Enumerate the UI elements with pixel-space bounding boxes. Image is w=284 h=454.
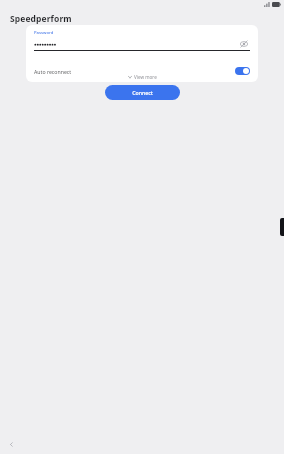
button[interactable]: View more [125, 73, 160, 81]
staticText: View more [134, 74, 157, 80]
other: Auto reconnect on [235, 67, 250, 75]
button[interactable]: Connect [105, 85, 180, 100]
staticText: Auto reconnect [34, 68, 72, 75]
staticText: Connect [132, 89, 153, 96]
button[interactable]: Show password [238, 38, 250, 50]
staticText: Password [34, 30, 54, 36]
staticText: Speedperform [10, 13, 72, 25]
button[interactable]: Back [5, 438, 17, 450]
button[interactable]: Auto reconnect [26, 63, 258, 79]
button[interactable]: Password [34, 30, 250, 51]
